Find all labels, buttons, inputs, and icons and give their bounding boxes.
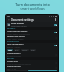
button[interactable]: Grey <box>30 49 36 51</box>
staticText: Share format <box>7 65 21 68</box>
button[interactable]: Text recognition <box>6 43 58 48</box>
button[interactable]: Compression <box>6 52 58 57</box>
staticText: Turn documents into <box>15 2 50 7</box>
button[interactable]: Auto-capture pages <box>6 30 58 35</box>
button[interactable]: Share format <box>6 65 58 70</box>
staticText: Document settings <box>11 18 34 21</box>
staticText: GENERAL <box>7 27 16 30</box>
staticText: PROCESSING <box>7 40 19 43</box>
button[interactable]: Default file name <box>6 35 58 40</box>
staticText: Scan profile <box>11 22 24 25</box>
button[interactable]: Toggle Text recognition <box>54 45 57 46</box>
button[interactable]: More options <box>54 18 57 21</box>
button[interactable]: Scan profile <box>6 22 58 27</box>
staticText: Colour <box>22 49 28 51</box>
staticText: Scan_{date}_{index} <box>7 38 24 40</box>
button[interactable]: Toggle scan profile <box>54 24 57 26</box>
staticText: Balanced quality <box>7 55 21 57</box>
staticText: Compression <box>7 52 21 55</box>
button[interactable]: Toggle Auto-capture pages <box>54 32 57 33</box>
staticText: Detect edges automatically <box>7 33 30 35</box>
staticText: smart workflows <box>20 7 45 11</box>
button[interactable]: Auto <box>7 49 13 51</box>
staticText: Grey <box>31 49 35 51</box>
staticText: Back up finished documents <box>7 63 31 65</box>
button[interactable]: Save changes <box>28 70 57 71</box>
staticText: Auto <box>8 49 12 51</box>
staticText: B/W <box>15 49 19 51</box>
staticText: Text recognition <box>7 43 24 46</box>
button[interactable]: Cloud sync <box>6 60 58 65</box>
staticText: Multi-page colour <box>11 25 27 27</box>
staticText: Cloud sync <box>7 60 19 63</box>
staticText: EXPORT <box>7 57 15 60</box>
button[interactable]: B/W <box>14 49 20 51</box>
staticText: Auto-capture pages <box>7 30 28 33</box>
button[interactable]: Back <box>7 18 10 21</box>
staticText: Default file name <box>7 35 25 38</box>
staticText: English · Offline <box>7 46 21 48</box>
staticText: PDF / A-2b <box>7 68 16 70</box>
button[interactable]: Colour <box>21 49 29 51</box>
